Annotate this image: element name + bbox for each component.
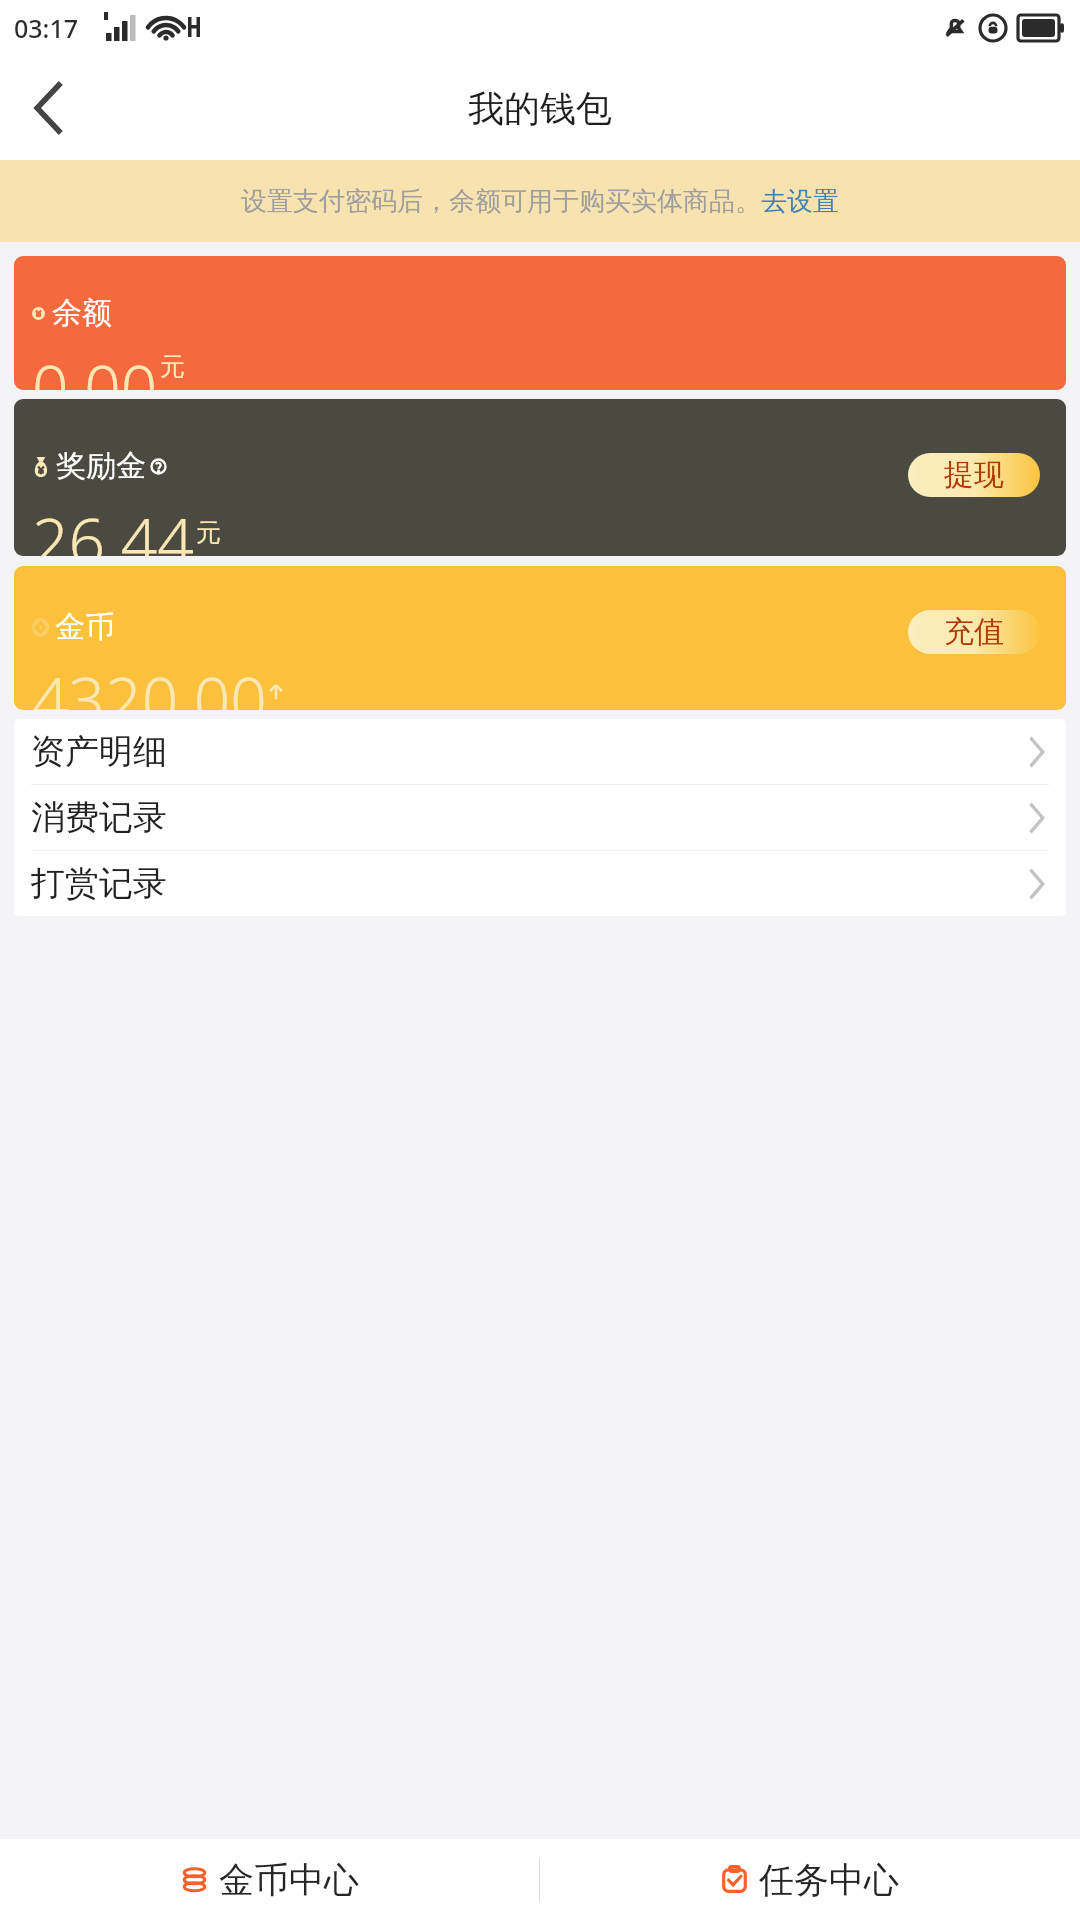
staticText: 26.44	[32, 497, 194, 556]
button[interactable]: 提现	[908, 453, 1040, 497]
staticText: 金币	[55, 608, 115, 646]
button[interactable]: 金币	[14, 566, 1066, 710]
staticText: 元	[196, 517, 221, 548]
staticText: 奖励金	[56, 447, 146, 485]
staticText: 设置支付密码后，余额可用于购买实体商品。	[241, 185, 761, 218]
button[interactable]: 奖励金	[14, 399, 1066, 556]
button[interactable]: 消费记录	[14, 785, 1066, 850]
staticText: 金币中心	[219, 1858, 359, 1902]
button[interactable]: 任务中心	[540, 1839, 1080, 1920]
staticText: 03:17	[14, 11, 79, 45]
staticText: 4320.00	[32, 656, 267, 710]
staticText: 元	[160, 351, 185, 382]
button[interactable]: 金币中心	[0, 1839, 539, 1920]
staticText: 去设置	[761, 185, 839, 218]
staticText: 消费记录	[31, 796, 167, 839]
staticText: 我的钱包	[468, 86, 612, 131]
button[interactable]: 余额	[14, 256, 1066, 390]
staticText: 余额	[52, 294, 112, 332]
staticText: 打赏记录	[31, 862, 167, 905]
staticText: 任务中心	[759, 1858, 899, 1902]
button[interactable]: 充值	[908, 610, 1040, 654]
staticText: 提现	[944, 456, 1004, 494]
staticText: 0.00	[32, 344, 158, 390]
button[interactable]: Back	[0, 60, 96, 156]
staticText: 充值	[944, 613, 1004, 651]
button[interactable]: 去设置	[761, 185, 839, 218]
button[interactable]: 资产明细	[14, 719, 1066, 784]
button[interactable]: 打赏记录	[14, 851, 1066, 916]
staticText: 资产明细	[31, 730, 167, 773]
